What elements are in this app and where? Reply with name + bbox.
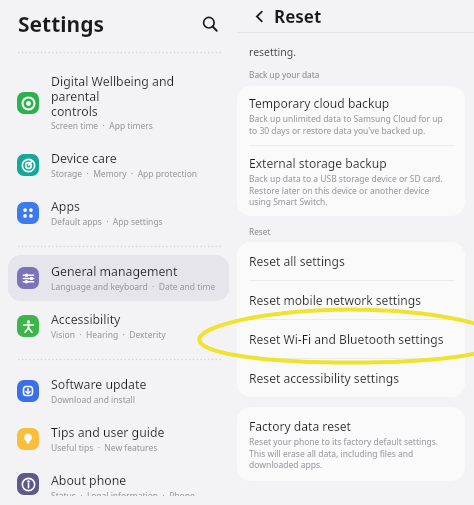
staticText: Temporary cloud backup [249, 95, 390, 111]
button[interactable]: Apps [8, 190, 229, 236]
staticText: Status · Legal information · Phone name [51, 490, 219, 496]
button[interactable]: Tips and user guide [8, 416, 229, 462]
staticText: About phone [51, 472, 127, 489]
button[interactable]: Software update [8, 368, 229, 414]
button[interactable]: About phone [8, 464, 229, 504]
button[interactable]: Accessibility [8, 303, 229, 349]
button[interactable]: Reset Wi-Fi and Bluetooth settings [237, 320, 465, 358]
staticText: Language and keyboard · Date and time [51, 281, 216, 293]
staticText: Vision · Hearing · Dexterity [51, 329, 166, 341]
staticText: Reset mobile network settings [249, 292, 421, 308]
button[interactable]: Back [248, 3, 325, 30]
staticText: Reset all settings [249, 253, 345, 269]
button[interactable]: Temporary cloud backup [237, 86, 465, 145]
staticText: Reset accessibility settings [249, 370, 400, 386]
staticText: Software update [51, 376, 147, 393]
staticText: Screen time · App timers [51, 120, 153, 132]
staticText: Device care [51, 150, 117, 167]
staticText: General management [51, 263, 178, 280]
button[interactable]: Digital Wellbeing and parental controls [8, 65, 229, 140]
button[interactable]: Reset mobile network settings [237, 281, 465, 319]
staticText: Accessibility [51, 311, 121, 328]
button[interactable]: External storage backup [237, 146, 465, 216]
button[interactable]: Device care [8, 142, 229, 188]
staticText: Reset [274, 5, 322, 28]
staticText: Digital Wellbeing and parental controls [51, 73, 219, 119]
staticText: Apps [51, 198, 80, 215]
staticText: Reset your phone to its factory default … [249, 436, 439, 470]
button[interactable]: General management [8, 255, 229, 301]
staticText: Download and install [51, 394, 135, 406]
staticText: External storage backup [249, 155, 387, 171]
button[interactable]: Reset all settings [237, 242, 465, 280]
staticText: Reset Wi-Fi and Bluetooth settings [249, 331, 444, 347]
staticText: Useful tips · New features [51, 442, 158, 454]
staticText: Tips and user guide [51, 424, 165, 441]
staticText: Factory data reset [249, 418, 351, 434]
staticText: Storage · Memory · App protection [51, 168, 198, 180]
staticText: Back up unlimited data to Samsung Cloud … [249, 113, 443, 136]
staticText: Back up data to a USB storage device or … [249, 173, 443, 207]
button[interactable]: Search [196, 10, 224, 38]
other: Back [251, 8, 268, 25]
staticText: Settings [18, 10, 105, 39]
staticText: Reset [249, 226, 271, 237]
staticText: resetting. [249, 45, 297, 59]
button[interactable]: Factory data reset [237, 407, 465, 481]
button[interactable]: Reset accessibility settings [237, 359, 465, 397]
staticText: Back up your data [249, 69, 320, 80]
staticText: Default apps · App settings [51, 216, 163, 228]
